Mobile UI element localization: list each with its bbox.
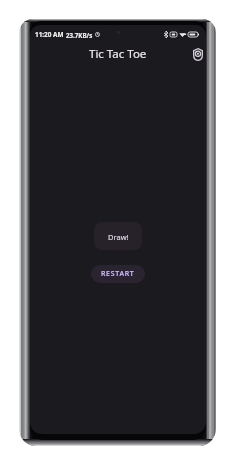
staticText: Tic Tac Toe xyxy=(89,46,147,62)
button[interactable]: Security scan xyxy=(188,44,206,64)
staticText: 11:20 AM xyxy=(35,30,64,39)
staticText: Draw! xyxy=(108,232,129,242)
button[interactable]: RESTART xyxy=(91,265,145,283)
staticText: 23.7KB/s xyxy=(66,31,93,39)
staticText: RESTART xyxy=(101,269,135,279)
